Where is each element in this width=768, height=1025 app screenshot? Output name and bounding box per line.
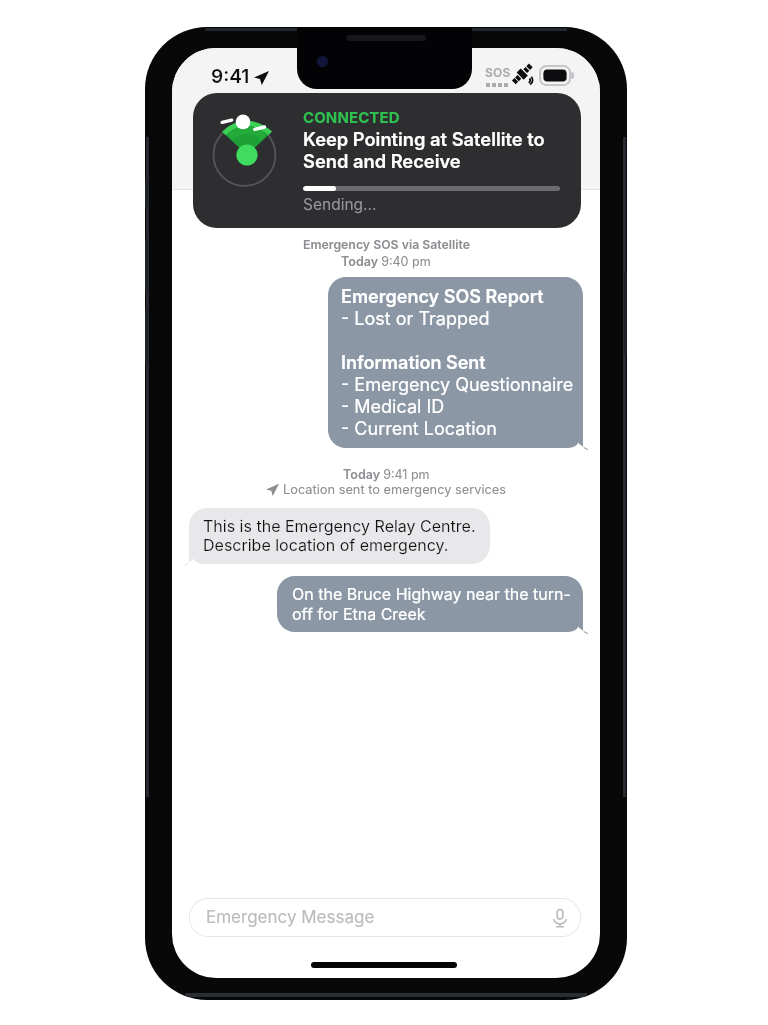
button[interactable]: Dictate message [549, 907, 571, 929]
staticText: On the Bruce Highway near the turn- off … [292, 584, 571, 624]
staticText: Sending... [303, 195, 377, 214]
staticText: Location sent to emergency services [283, 482, 507, 497]
staticText: Today 9:40 pm [341, 254, 431, 269]
staticText: Emergency SOS Report - Lost or Trapped I… [341, 286, 574, 440]
staticText: CONNECTED [303, 108, 400, 126]
button[interactable]: On the Bruce Highway near the turn- off … [277, 576, 591, 637]
staticText: Today 9:41 pm [343, 467, 430, 482]
button[interactable]: This is the Emergency Relay Centre. [182, 508, 491, 569]
staticText: Emergency Message [206, 907, 375, 928]
button[interactable]: Emergency SOS Report - Lost or Trapped I… [328, 277, 591, 453]
staticText: SOS [485, 65, 511, 80]
staticText: This is the Emergency Relay Centre. [203, 516, 476, 535]
button[interactable]: Emergency Message [189, 898, 581, 937]
staticText: 9:41 [211, 65, 250, 88]
staticText: Emergency SOS via Satellite [303, 237, 470, 252]
staticText: Describe location of emergency. [203, 535, 449, 554]
staticText: Keep Pointing at Satellite to Send and R… [303, 128, 545, 172]
button[interactable]: CONNECTED [193, 93, 581, 228]
